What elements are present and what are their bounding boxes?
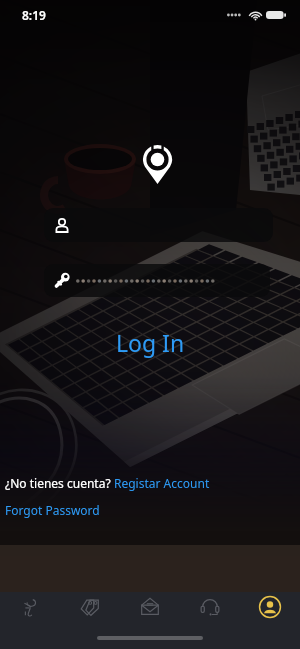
button[interactable]: Log In: [20, 322, 280, 362]
button[interactable]: Perfumes: [0, 592, 60, 622]
staticText: Log In: [116, 327, 185, 358]
staticText: Registar Account: [114, 475, 210, 491]
staticText: Forgot Password: [5, 502, 100, 518]
button[interactable]: Profile: [240, 592, 300, 622]
button[interactable]: [44, 208, 273, 242]
button[interactable]: [44, 264, 270, 297]
button[interactable]: Offers: [60, 592, 120, 622]
staticText: ¿No tienes cuenta?: [5, 475, 114, 491]
button[interactable]: Forgot Password: [5, 502, 100, 518]
button[interactable]: Registar Account: [114, 475, 210, 491]
staticText: 8:19: [22, 7, 46, 23]
button[interactable]: Support: [180, 592, 240, 622]
button[interactable]: Messages: [120, 592, 180, 622]
